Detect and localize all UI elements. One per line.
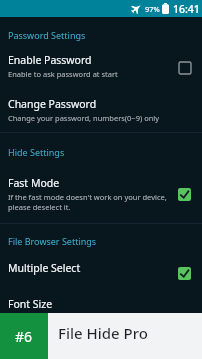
button[interactable] <box>178 188 191 201</box>
button[interactable] <box>179 62 191 74</box>
button[interactable] <box>178 267 191 280</box>
staticText: Hide Settings <box>8 146 65 158</box>
staticText: Enable to ask password at start <box>8 69 118 79</box>
staticText: If the fast mode doesn't work on your de… <box>8 192 167 212</box>
button[interactable]: Multiple Select <box>0 261 202 275</box>
button[interactable]: Fast Mode <box>0 176 202 212</box>
staticText: Password Settings <box>8 29 86 41</box>
staticText: Font Size <box>8 297 53 311</box>
button[interactable]: Change Password <box>0 97 202 123</box>
staticText: 16:41 <box>173 2 200 16</box>
staticText: Enable Password <box>8 53 92 67</box>
button[interactable]: Enable Password <box>0 53 202 79</box>
staticText: File Hide Pro <box>58 323 148 343</box>
button[interactable]: Font Size <box>0 297 202 311</box>
button[interactable]: #6 <box>0 313 48 359</box>
staticText: #6 <box>15 327 33 346</box>
staticText: Change Password <box>8 97 97 111</box>
staticText: Fast Mode <box>8 176 60 190</box>
staticText: Change your password, numbers(0~9) only <box>8 113 160 123</box>
staticText: File Browser Settings <box>8 235 97 247</box>
staticText: Multiple Select <box>8 261 81 275</box>
staticText: 97% <box>145 4 160 14</box>
